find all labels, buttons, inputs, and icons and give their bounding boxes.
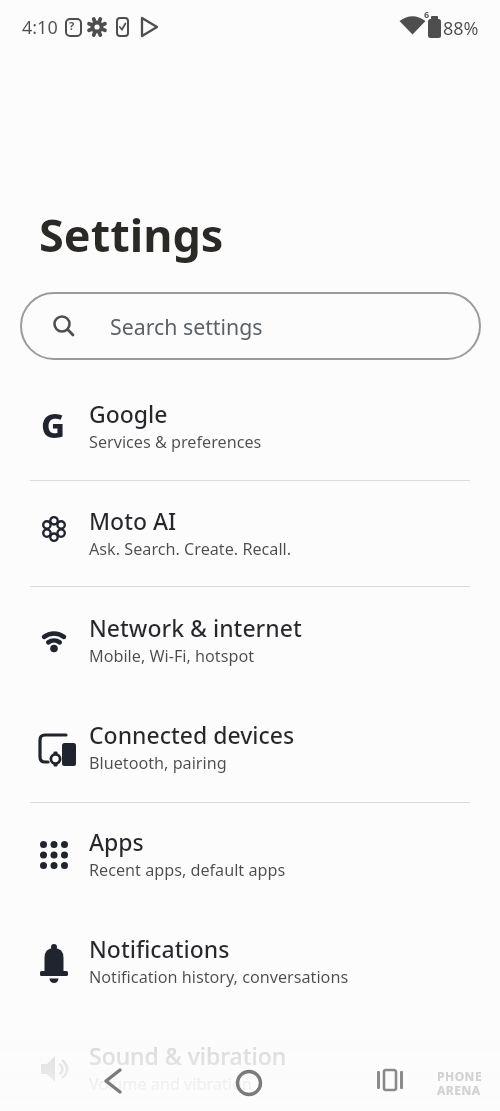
staticText: Settings: [39, 204, 224, 265]
staticText: Notification history, conversations: [89, 966, 349, 988]
staticText: Ask. Search. Create. Recall.: [89, 538, 292, 560]
staticText: Notifications: [89, 933, 230, 964]
button[interactable]: Network & internet: [0, 588, 500, 694]
staticText: Connected devices: [89, 719, 295, 750]
staticText: 88%: [443, 16, 479, 41]
button[interactable]: Sound & vibration: [0, 1016, 500, 1111]
staticText: 6: [424, 8, 430, 20]
button[interactable]: Connected devices: [0, 695, 500, 801]
staticText: Volume and vibration: [89, 1073, 252, 1095]
button[interactable]: [80, 1056, 144, 1106]
staticText: Sound & vibration: [89, 1040, 287, 1071]
staticText: Google: [89, 398, 168, 429]
button[interactable]: Moto AI: [0, 481, 500, 587]
staticText: ?: [69, 18, 75, 33]
staticText: G: [41, 403, 66, 448]
staticText: ARENA: [437, 1082, 481, 1098]
staticText: Apps: [89, 826, 144, 857]
button[interactable]: Search settings: [20, 292, 481, 360]
staticText: Network & internet: [89, 612, 302, 643]
staticText: Search settings: [110, 312, 263, 341]
button[interactable]: G: [0, 374, 500, 480]
button[interactable]: [356, 1056, 420, 1106]
staticText: Services & preferences: [89, 431, 262, 453]
button[interactable]: [218, 1056, 282, 1106]
staticText: Recent apps, default apps: [89, 859, 286, 881]
staticText: 4:10: [22, 15, 58, 40]
button[interactable]: Apps: [0, 802, 500, 908]
button[interactable]: Notifications: [0, 909, 500, 1015]
staticText: PHONE: [437, 1068, 483, 1084]
staticText: Bluetooth, pairing: [89, 752, 227, 774]
staticText: Moto AI: [89, 505, 177, 536]
staticText: Mobile, Wi-Fi, hotspot: [89, 645, 255, 667]
